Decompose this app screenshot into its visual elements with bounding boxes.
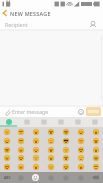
button[interactable]: Emoji xyxy=(28,146,43,154)
button[interactable]: Recipient xyxy=(5,18,87,31)
staticText: SEND xyxy=(88,109,99,114)
button[interactable]: GIFs xyxy=(52,117,69,127)
button[interactable]: Attach file xyxy=(2,107,12,117)
button[interactable]: Enter message xyxy=(12,106,76,117)
button[interactable]: Layout xyxy=(73,172,88,183)
button[interactable]: ABC xyxy=(0,172,14,183)
button[interactable]: Emoji xyxy=(0,163,14,171)
button[interactable]: Emoji xyxy=(43,128,58,136)
button[interactable]: Emoji xyxy=(43,146,58,154)
button[interactable]: Emoji xyxy=(43,163,58,171)
button[interactable]: Recent xyxy=(0,117,18,127)
button[interactable]: Insert emoji xyxy=(76,107,86,117)
button[interactable]: More xyxy=(86,117,103,127)
button[interactable]: Emoji xyxy=(73,137,88,145)
button[interactable]: Emoji xyxy=(14,154,28,162)
button[interactable]: Emoji xyxy=(0,137,14,145)
button[interactable]: Emoji xyxy=(0,154,14,162)
button[interactable]: Emoji xyxy=(73,154,88,162)
button[interactable]: Emoji xyxy=(88,137,103,145)
staticText: Recipient xyxy=(5,21,28,28)
button[interactable]: Delete xyxy=(88,172,103,183)
button[interactable]: Emoji xyxy=(58,163,73,171)
staticText: ABC xyxy=(4,175,11,180)
button[interactable]: Emoji xyxy=(14,146,28,154)
button[interactable]: Settings xyxy=(43,172,58,183)
button[interactable]: Recent xyxy=(14,172,28,183)
button[interactable]: Apps xyxy=(69,117,86,127)
button[interactable]: Emoji xyxy=(14,128,28,136)
staticText: Enter message xyxy=(12,108,49,115)
staticText: NEW MESSAGE xyxy=(10,10,51,17)
button[interactable]: Emoji xyxy=(28,137,43,145)
button[interactable]: Emoji xyxy=(73,146,88,154)
button[interactable]: Stickers xyxy=(35,117,52,127)
button[interactable]: Emoji xyxy=(0,128,14,136)
button[interactable]: Sticker xyxy=(58,172,73,183)
button[interactable]: Emoji xyxy=(88,163,103,171)
button[interactable]: Emoji xyxy=(73,128,88,136)
button[interactable]: Choose contact xyxy=(87,19,98,30)
button[interactable]: SEND xyxy=(86,107,101,116)
button[interactable]: Emoji xyxy=(28,154,43,162)
button[interactable]: Emoji xyxy=(14,137,28,145)
button[interactable]: Emoji xyxy=(14,163,28,171)
button[interactable]: Emoji xyxy=(88,146,103,154)
button[interactable]: Emoji xyxy=(28,163,43,171)
button[interactable]: Emoji xyxy=(88,128,103,136)
button[interactable]: Emoji xyxy=(28,172,43,183)
button[interactable]: Emoji xyxy=(0,146,14,154)
button[interactable]: Emoji xyxy=(88,154,103,162)
button[interactable]: Back xyxy=(0,8,10,18)
button[interactable]: Emoji xyxy=(58,154,73,162)
button[interactable]: Emoji xyxy=(28,128,43,136)
button[interactable]: Emoji xyxy=(58,128,73,136)
button[interactable]: Emoji xyxy=(58,137,73,145)
button[interactable]: Emoticons xyxy=(18,117,35,127)
button[interactable]: Emoji xyxy=(73,163,88,171)
button[interactable]: Emoji xyxy=(43,137,58,145)
button[interactable]: Emoji xyxy=(43,154,58,162)
button[interactable]: Emoji xyxy=(58,146,73,154)
